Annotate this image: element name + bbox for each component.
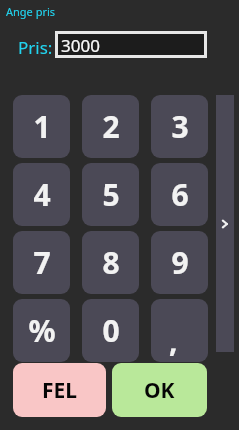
staticText: Ange pris [6, 4, 56, 19]
button[interactable]: OK [112, 363, 207, 417]
staticText: 5 [102, 174, 120, 215]
button[interactable]: 3000 [58, 34, 204, 55]
button[interactable]: 6 [151, 163, 208, 226]
button[interactable]: 3 [151, 95, 208, 158]
button[interactable]: Next [216, 95, 234, 352]
button[interactable]: 9 [151, 231, 208, 294]
button[interactable]: 5 [82, 163, 139, 226]
staticText: 3 [171, 106, 189, 147]
staticText: , [169, 320, 178, 361]
staticText: 6 [171, 174, 189, 215]
button[interactable]: 4 [13, 163, 70, 226]
button[interactable]: FEL [13, 363, 106, 417]
staticText: 9 [171, 242, 189, 283]
staticText: % [28, 310, 56, 351]
button[interactable]: 1 [13, 95, 70, 158]
button[interactable]: , [151, 299, 208, 362]
staticText: Pris: [18, 36, 53, 59]
staticText: 1 [33, 106, 51, 147]
staticText: 8 [102, 242, 120, 283]
staticText: 4 [33, 174, 51, 215]
button[interactable]: 2 [82, 95, 139, 158]
button[interactable]: 0 [82, 299, 139, 362]
button[interactable]: % [13, 299, 70, 362]
staticText: OK [144, 376, 175, 405]
staticText: 2 [102, 106, 120, 147]
staticText: 7 [33, 242, 51, 283]
staticText: 0 [102, 310, 120, 351]
staticText: 3000 [61, 34, 100, 55]
button[interactable]: 8 [82, 231, 139, 294]
button[interactable]: 7 [13, 231, 70, 294]
staticText: FEL [42, 376, 78, 405]
